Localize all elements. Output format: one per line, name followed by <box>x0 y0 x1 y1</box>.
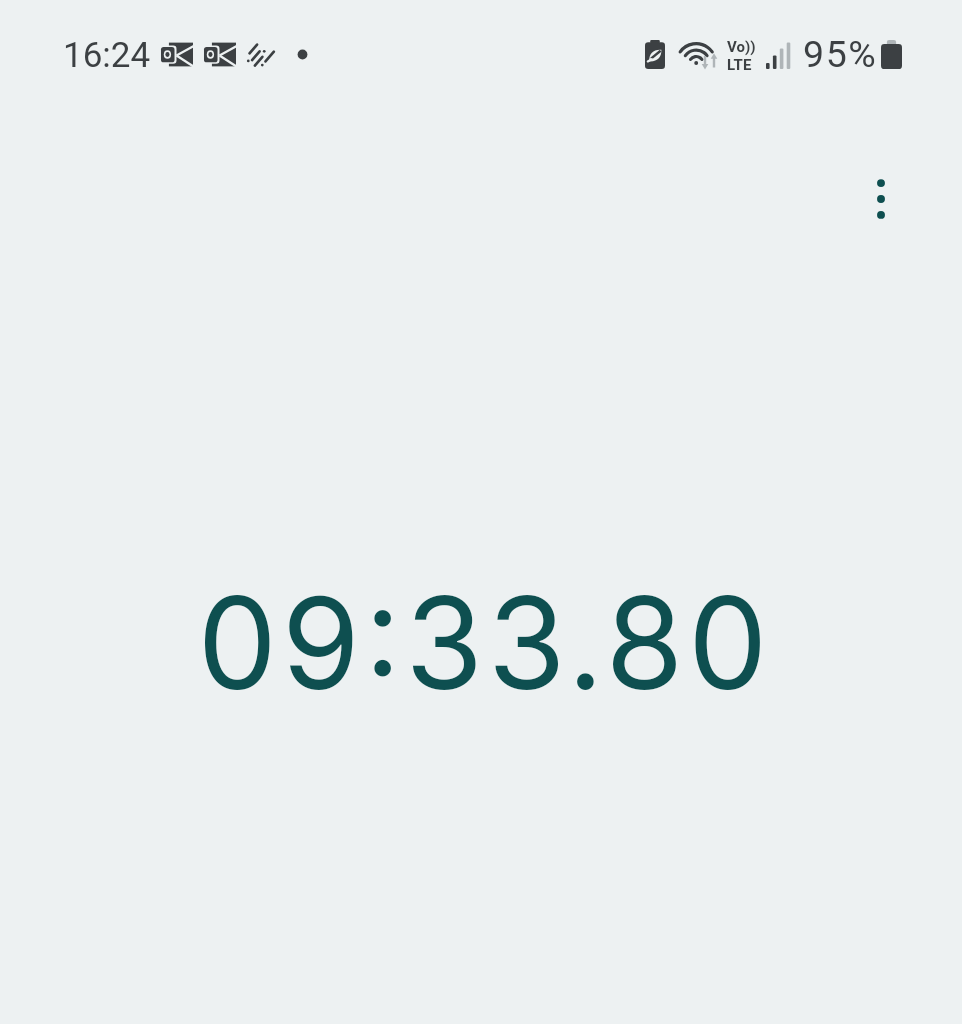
staticText: Vo)) <box>727 38 756 56</box>
button[interactable]: Stopwatch 09:33.80, tap to start or stop <box>180 560 782 724</box>
staticText: LTE <box>727 56 752 74</box>
staticText: 95% <box>803 32 878 76</box>
staticText: 16:24 <box>63 35 151 76</box>
button[interactable]: More options <box>853 171 909 227</box>
